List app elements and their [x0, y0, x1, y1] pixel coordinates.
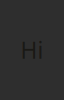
staticText: Hi [20, 35, 43, 65]
